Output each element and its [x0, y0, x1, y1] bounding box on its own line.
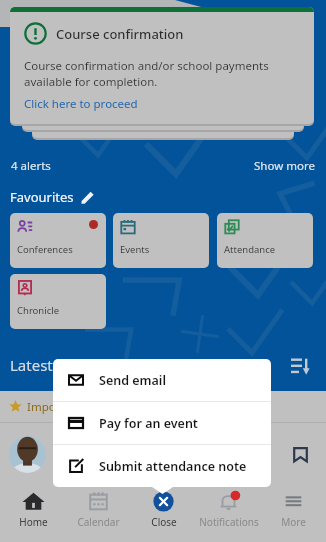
button[interactable]: Sort [291, 358, 310, 375]
button[interactable]: Click here to proceed [24, 96, 138, 112]
staticText: Conferences [17, 243, 73, 256]
button[interactable]: Close [131, 486, 196, 542]
staticText: Show more [254, 158, 315, 174]
staticText: Notifications [199, 515, 259, 529]
staticText: 4 alerts [11, 158, 51, 174]
button[interactable]: Bookmark [285, 439, 316, 470]
button[interactable]: Bookmark [0, 423, 326, 486]
staticText: Latest [10, 355, 53, 375]
button[interactable]: Notifications [196, 486, 261, 542]
staticText: Close [151, 515, 177, 529]
button[interactable]: Calendar [66, 486, 131, 542]
button[interactable]: Chronicle [10, 274, 106, 329]
staticText: Attendance [224, 243, 276, 256]
button[interactable]: More [261, 486, 326, 542]
staticText: Home [19, 515, 48, 529]
button[interactable]: Submit attendance note [53, 445, 271, 487]
staticText: Calendar [77, 515, 120, 529]
staticText: Course confirmation and/or school paymen… [24, 58, 269, 89]
button[interactable]: Attendance [217, 213, 313, 268]
staticText: Submit attendance note [99, 458, 247, 475]
staticText: Send email [99, 372, 166, 389]
staticText: Favourites [10, 188, 74, 206]
staticText: Important [27, 399, 83, 415]
button[interactable]: Conferences [10, 213, 106, 268]
button[interactable]: Course confirmation [10, 7, 314, 124]
staticText: Pay for an event [99, 415, 198, 432]
button[interactable]: Edit favourites [81, 191, 94, 204]
staticText: Course confirmation [56, 25, 184, 43]
staticText: Events [120, 243, 150, 256]
staticText: Chronicle [17, 304, 60, 317]
button[interactable]: Send email [53, 359, 271, 401]
button[interactable]: Home [0, 486, 66, 542]
button[interactable]: Show more [254, 158, 315, 174]
button[interactable]: Events [113, 213, 209, 268]
staticText: More [281, 515, 306, 529]
button[interactable]: Pay for an event [53, 402, 271, 444]
